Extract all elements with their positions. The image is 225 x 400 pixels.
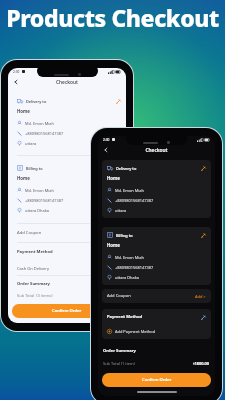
- staticText: Md. Emon Miah: [115, 188, 144, 193]
- staticText: +8809801568147387: [115, 198, 154, 203]
- button[interactable]: Add Coupon: [102, 289, 211, 303]
- staticText: Products Checkout: [0, 2, 225, 33]
- button[interactable]: Edit address: [116, 166, 121, 171]
- staticText: Add Payment Method: [115, 329, 156, 334]
- button[interactable]: Edit address: [201, 166, 206, 171]
- staticText: Home: [107, 242, 120, 248]
- staticText: Cash On Delivery: [17, 266, 50, 271]
- staticText: Order Summary: [17, 281, 50, 287]
- staticText: Md. Emon Miah: [25, 188, 54, 193]
- staticText: ৳1800.00: [193, 361, 210, 366]
- staticText: 2:30: [103, 138, 110, 142]
- button[interactable]: Edit address: [201, 233, 206, 238]
- staticText: +8809801568147387: [25, 198, 64, 203]
- button[interactable]: Back: [12, 78, 20, 86]
- staticText: +8809801568147387: [115, 265, 154, 270]
- staticText: Checkout: [20, 79, 114, 85]
- staticText: Add Coupon: [107, 293, 131, 299]
- staticText: +8809801568147387: [25, 131, 64, 136]
- staticText: Delivery to: [26, 99, 47, 104]
- staticText: Checkout: [110, 147, 203, 153]
- staticText: Payment Method: [17, 249, 53, 255]
- staticText: Delivery to: [116, 166, 137, 171]
- button[interactable]: Confirm Order: [12, 304, 122, 318]
- staticText: Md. Emon Miah: [115, 255, 144, 260]
- staticText: Sub Total (3 items): [17, 293, 53, 298]
- button[interactable]: Back: [102, 146, 110, 154]
- staticText: uttara Dhaka: [25, 208, 49, 213]
- button[interactable]: Confirm Order: [102, 373, 211, 387]
- staticText: Payment Method: [107, 314, 143, 320]
- button[interactable]: Edit payment method: [201, 315, 206, 320]
- staticText: 2:30: [13, 70, 20, 74]
- staticText: Billing to: [26, 166, 43, 171]
- staticText: Billing to: [116, 233, 133, 238]
- staticText: Add Coupon: [17, 230, 42, 236]
- staticText: Home: [17, 108, 30, 114]
- button[interactable]: Edit address: [116, 99, 121, 104]
- button[interactable]: Add Coupon: [17, 224, 121, 242]
- staticText: Home: [107, 175, 120, 181]
- staticText: Sub Total (1 item): [103, 361, 135, 366]
- staticText: Md. Emon Miah: [25, 121, 54, 126]
- staticText: Home: [17, 175, 30, 181]
- staticText: Order Summary: [103, 348, 136, 354]
- staticText: uttara Dhaka: [115, 275, 139, 280]
- staticText: Confirm Order: [142, 377, 172, 383]
- staticText: Confirm Order: [52, 308, 82, 314]
- button[interactable]: Add Payment Method: [107, 329, 156, 334]
- staticText: uttara: [115, 208, 127, 213]
- staticText: uttara: [25, 141, 37, 146]
- staticText: Add >: [195, 294, 206, 299]
